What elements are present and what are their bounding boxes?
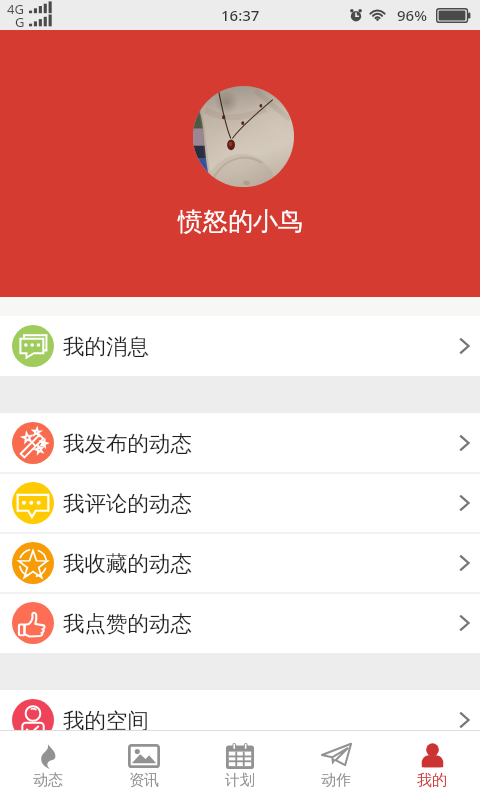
staticText: 我评论的动态 bbox=[63, 490, 192, 517]
button[interactable]: 动态 bbox=[0, 731, 96, 800]
button[interactable]: 动作 bbox=[288, 731, 384, 800]
button[interactable]: 我的空间 bbox=[0, 690, 480, 750]
button[interactable]: 计划 bbox=[192, 731, 288, 800]
staticText: 我点赞的动态 bbox=[63, 610, 192, 637]
staticText: 动态 bbox=[33, 771, 63, 790]
button[interactable]: 我评论的动态 bbox=[0, 473, 480, 533]
staticText: 我发布的动态 bbox=[63, 430, 192, 457]
button[interactable]: 我的 bbox=[384, 731, 480, 800]
button[interactable]: 资讯 bbox=[96, 731, 192, 800]
button[interactable]: 我的消息 bbox=[0, 316, 480, 376]
staticText: G bbox=[15, 13, 25, 31]
staticText: 我收藏的动态 bbox=[63, 550, 192, 577]
staticText: 计划 bbox=[225, 771, 255, 790]
staticText: 我的空间 bbox=[63, 707, 149, 734]
staticText: 动作 bbox=[321, 771, 351, 790]
staticText: 愤怒的小鸟 bbox=[178, 206, 303, 237]
staticText: 资讯 bbox=[129, 771, 159, 790]
staticText: 16:37 bbox=[221, 5, 260, 25]
staticText: 我的消息 bbox=[63, 333, 149, 360]
button[interactable]: Profile photo bbox=[193, 86, 294, 187]
staticText: 96% bbox=[397, 5, 427, 25]
staticText: 4G bbox=[7, 0, 24, 18]
button[interactable]: 我收藏的动态 bbox=[0, 533, 480, 593]
button[interactable]: 我点赞的动态 bbox=[0, 593, 480, 653]
button[interactable]: 我发布的动态 bbox=[0, 413, 480, 473]
staticText: 我的 bbox=[417, 771, 447, 790]
